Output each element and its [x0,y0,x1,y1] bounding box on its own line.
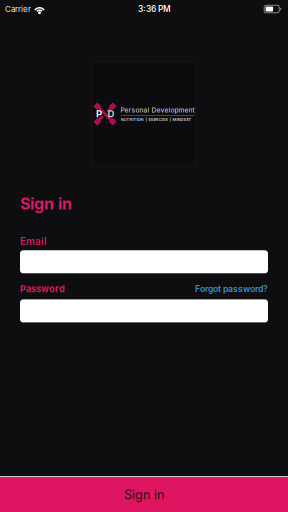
staticText: Forgot password? [195,284,268,294]
staticText: Personal Development [120,106,194,114]
staticText: Email [20,235,47,247]
staticText: NUTRITION | EXERCISE | MINDSET [120,117,191,122]
button[interactable]: Sign in [0,476,288,512]
staticText: Carrier [5,4,31,14]
button[interactable]: Forgot password? [195,284,268,294]
staticText: P [96,108,102,120]
staticText: 3:36 PM [138,4,171,14]
staticText: Sign in [20,194,72,213]
staticText: Password [20,283,65,294]
staticText: D [107,108,114,120]
staticText: Sign in [124,487,164,502]
